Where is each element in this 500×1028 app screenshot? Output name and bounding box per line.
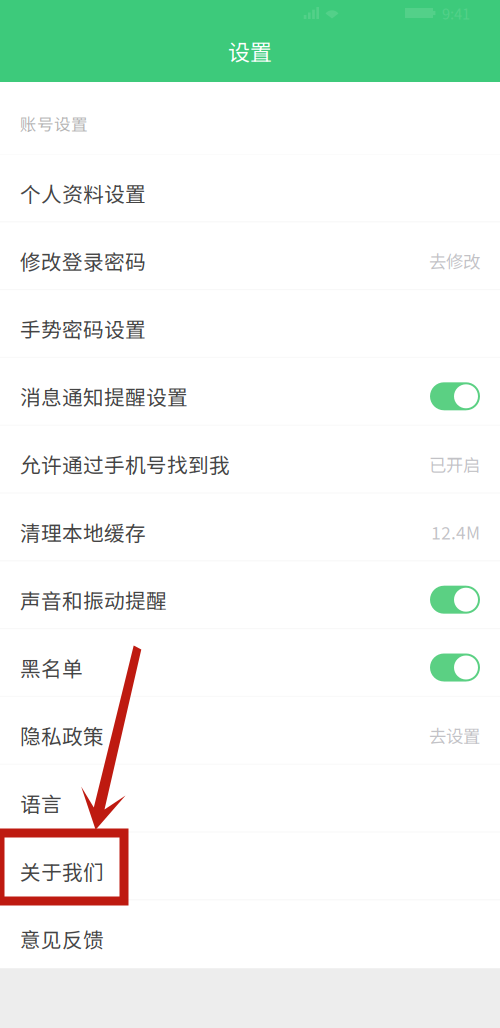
staticText: 12.4M (431, 519, 480, 544)
staticText: 修改登录密码 (20, 246, 146, 276)
staticText: 去设置 (429, 723, 480, 748)
staticText: 黑名单 (20, 652, 83, 682)
button[interactable]: 个人资料设置 (0, 154, 500, 222)
button[interactable]: 修改登录密码 (0, 222, 500, 290)
button[interactable]: 设置 (228, 26, 272, 76)
staticText: 设置 (228, 35, 272, 67)
staticText: 消息通知提醒设置 (20, 381, 188, 411)
staticText: 已开启 (429, 452, 480, 477)
staticText: 手势密码设置 (20, 313, 146, 343)
button[interactable]: 允许通过手机号找到我 (0, 426, 500, 493)
staticText: 个人资料设置 (20, 178, 146, 208)
staticText: 语言 (20, 788, 62, 818)
staticText: 9:41 (442, 2, 470, 24)
button[interactable]: 意见反馈 (0, 900, 500, 968)
staticText: 声音和振动提醒 (20, 585, 167, 615)
button[interactable]: 手势密码设置 (0, 290, 500, 358)
staticText: 隐私政策 (20, 720, 104, 750)
staticText: 去修改 (429, 248, 480, 273)
button[interactable]: 隐私政策 (0, 697, 500, 765)
button[interactable]: 语言 (0, 765, 500, 832)
button[interactable]: 黑名单 (0, 629, 500, 697)
button[interactable]: 关于我们 (0, 832, 500, 900)
button[interactable]: 消息通知提醒设置 (0, 358, 500, 426)
staticText: 关于我们 (20, 856, 104, 886)
staticText: 意见反馈 (20, 924, 104, 954)
staticText: 允许通过手机号找到我 (20, 449, 230, 479)
button[interactable]: 清理本地缓存 (0, 493, 500, 561)
button[interactable]: 声音和振动提醒 (0, 561, 500, 629)
staticText: 清理本地缓存 (20, 517, 146, 547)
staticText: 账号设置 (20, 111, 88, 135)
